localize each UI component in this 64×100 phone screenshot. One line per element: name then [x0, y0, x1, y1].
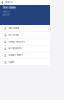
button[interactable]: My Account: [0, 32, 50, 39]
button[interactable]: Back: [0, 0, 5, 5]
staticText: Logout: [8, 61, 14, 63]
staticText: Tarun Chauhan: [2, 6, 15, 9]
staticText: Add Location: [8, 27, 19, 29]
button[interactable]: Add Location: [0, 25, 50, 32]
button[interactable]: Activate Theme: [0, 52, 50, 59]
button[interactable]: Logout: [0, 59, 50, 66]
staticText: My Account: [8, 34, 19, 36]
button[interactable]: My Documents: [0, 45, 50, 52]
staticText: Change Password: [8, 41, 24, 43]
staticText: 0092345: [2, 14, 9, 16]
staticText: Activate Theme: [8, 54, 22, 56]
staticText: Profile: [5, 1, 12, 4]
staticText: Employee: [2, 11, 9, 12]
button[interactable]: Change Password: [0, 39, 50, 45]
staticText: My Documents: [8, 47, 22, 50]
